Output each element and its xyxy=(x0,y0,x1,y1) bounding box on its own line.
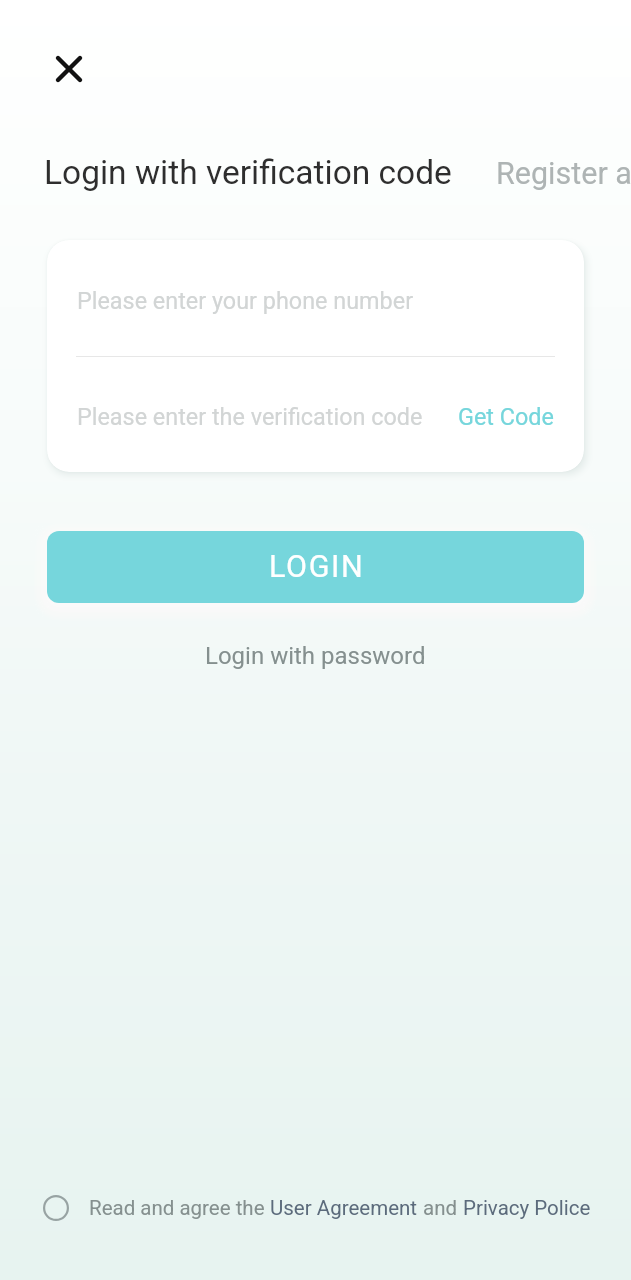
staticText: Login with verification code xyxy=(44,153,452,192)
button[interactable]: Login with verification code xyxy=(44,153,452,192)
staticText: User Agreement xyxy=(270,1196,418,1220)
button[interactable]: Close xyxy=(45,45,92,92)
button[interactable]: Get Code xyxy=(458,401,554,428)
staticText: Login with password xyxy=(205,642,426,670)
staticText: Get Code xyxy=(458,403,554,430)
staticText: and xyxy=(418,1196,463,1220)
button[interactable]: Privacy Police xyxy=(463,1196,591,1220)
staticText: Read and agree the xyxy=(89,1196,270,1220)
button[interactable]: Please enter the verification code xyxy=(77,401,458,428)
staticText: Please enter the verification code xyxy=(77,403,423,430)
button[interactable]: Register a new account xyxy=(496,156,631,192)
staticText: Please enter your phone number xyxy=(77,287,414,314)
button[interactable]: LOGIN xyxy=(47,531,584,603)
button[interactable]: Agree to terms xyxy=(40,1192,71,1223)
staticText: Privacy Police xyxy=(463,1196,591,1220)
button[interactable]: Login with password xyxy=(193,636,438,676)
staticText: LOGIN xyxy=(269,549,365,585)
button[interactable]: Please enter your phone number xyxy=(47,240,584,356)
staticText: Register a new account xyxy=(496,156,631,192)
button[interactable]: User Agreement xyxy=(270,1196,418,1220)
